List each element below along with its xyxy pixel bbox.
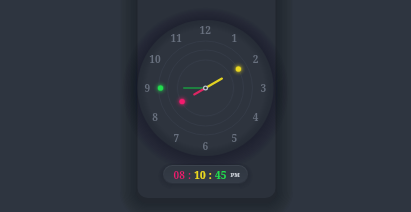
button[interactable]: Analog clock widget showing 08:10:45 PM xyxy=(0,0,411,212)
